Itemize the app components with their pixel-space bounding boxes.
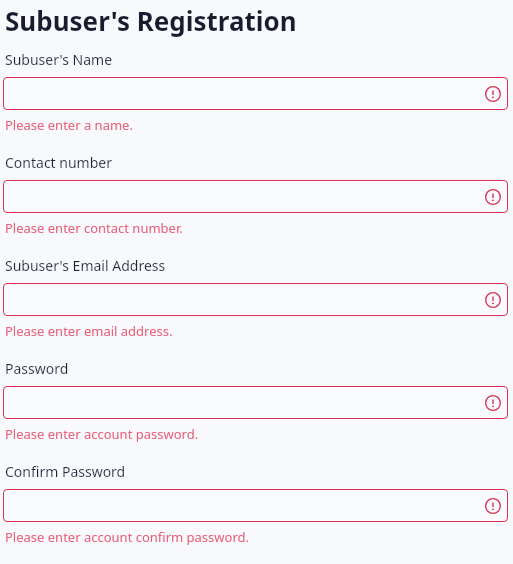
- button[interactable]: Confirm Password: [3, 489, 508, 522]
- staticText: Please enter account confirm password.: [5, 528, 249, 546]
- other: Error: [485, 498, 501, 514]
- staticText: Contact number: [5, 153, 112, 172]
- staticText: Password: [5, 359, 69, 378]
- staticText: Subuser's Email Address: [5, 256, 166, 275]
- other: Error: [485, 189, 501, 205]
- staticText: Please enter account password.: [5, 425, 199, 443]
- other: Error: [485, 395, 501, 411]
- staticText: Subuser's Name: [5, 50, 113, 69]
- button[interactable]: Password: [3, 386, 508, 419]
- other: Error: [485, 292, 501, 308]
- staticText: Please enter contact number.: [5, 219, 183, 237]
- staticText: Confirm Password: [5, 462, 126, 481]
- other: Error: [485, 86, 501, 102]
- button[interactable]: Subuser's Name: [3, 77, 508, 110]
- staticText: Please enter email address.: [5, 322, 173, 340]
- button[interactable]: Contact number: [3, 180, 508, 213]
- staticText: Subuser's Registration: [5, 3, 297, 38]
- button[interactable]: Subuser's Email Address: [3, 283, 508, 316]
- staticText: Please enter a name.: [5, 116, 133, 134]
